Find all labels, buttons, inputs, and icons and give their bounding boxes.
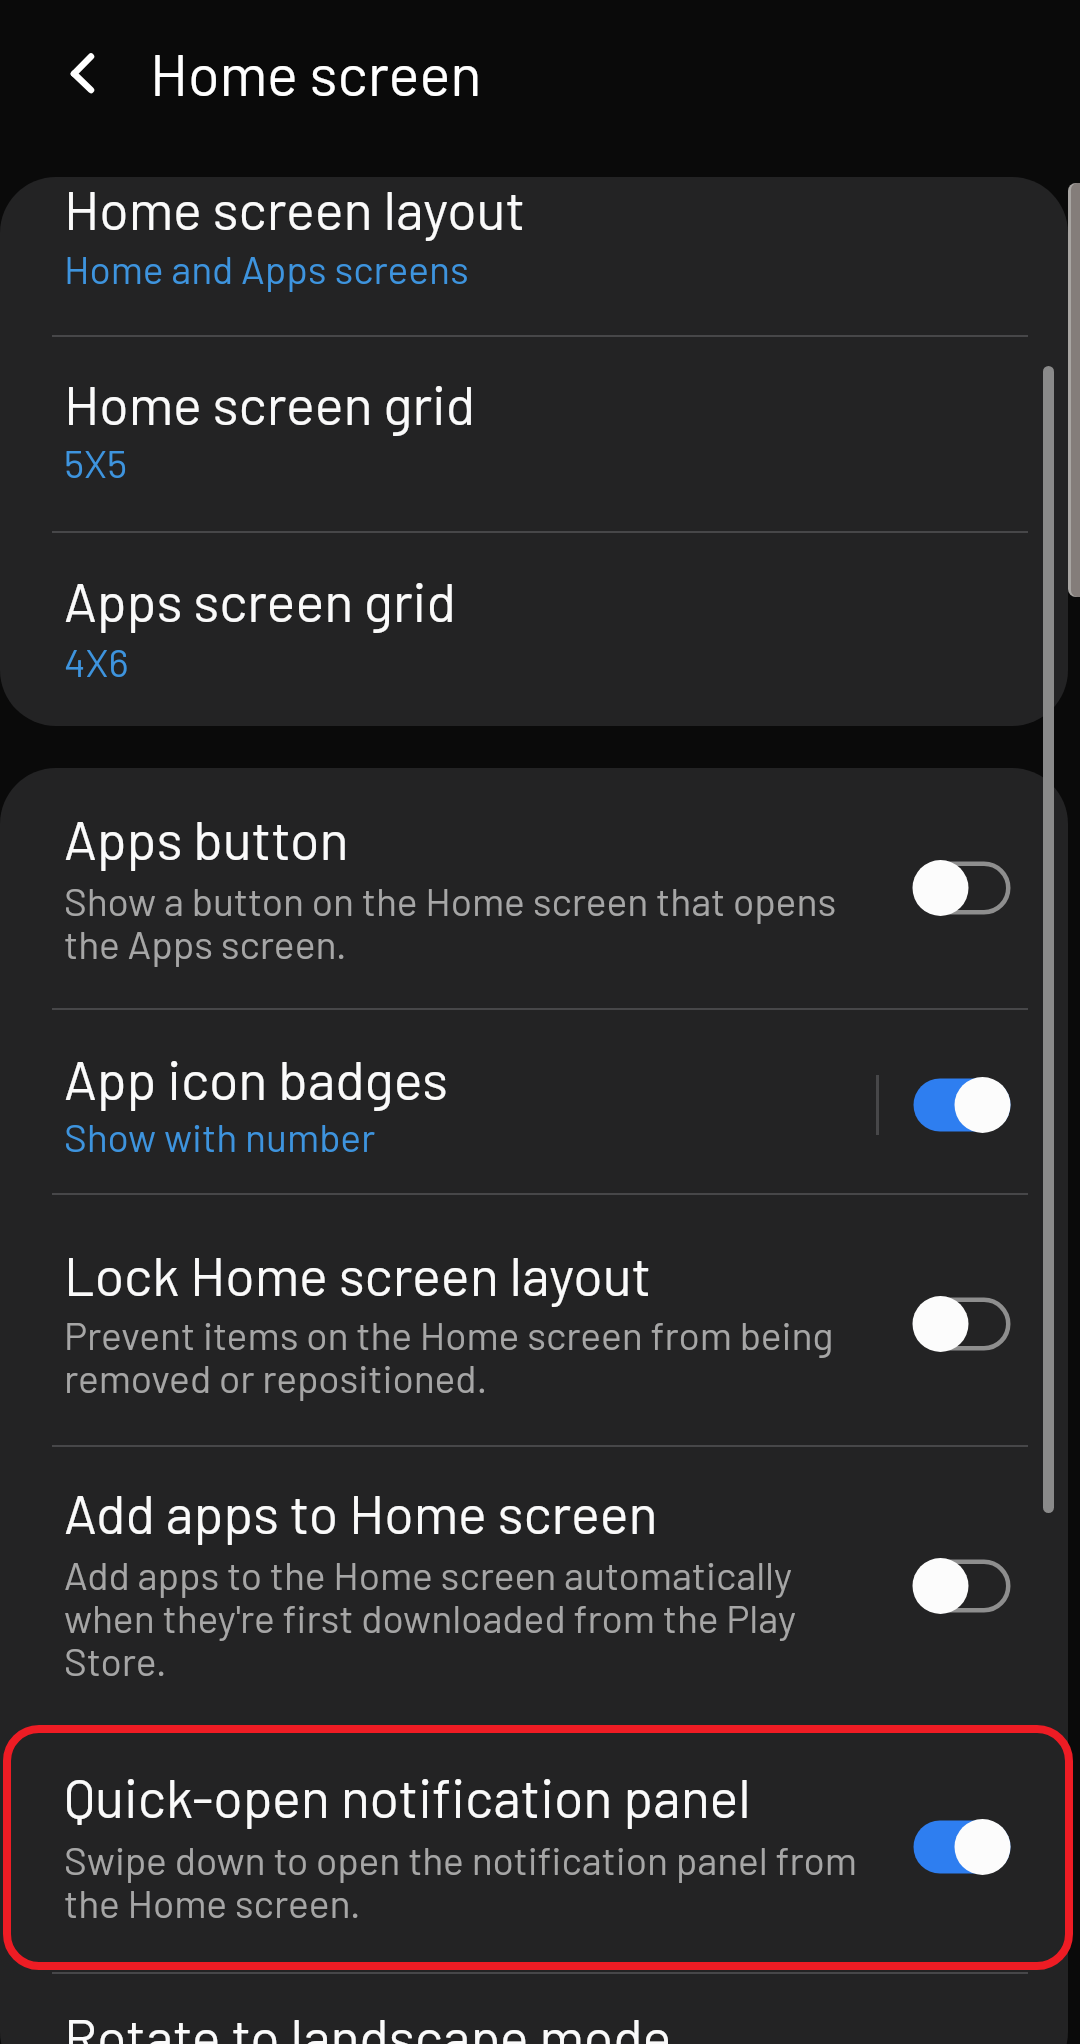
staticText: Home screen grid [64,371,476,436]
button[interactable]: Switch off [892,1534,1032,1638]
staticText: Apps screen grid [64,568,456,633]
staticText: Home screen [150,38,482,108]
button[interactable]: Home screen grid [0,337,1080,531]
staticText: Add apps to the Home screen automaticall… [64,1551,796,1684]
staticText: Home screen layout [64,176,526,241]
button[interactable]: Apps button [0,768,1080,1008]
staticText: Rotate to landscape mode [64,2004,672,2044]
staticText: Lock Home screen layout [64,1242,652,1307]
staticText: Add apps to Home screen [64,1480,658,1545]
staticText: Home and Apps screens [64,245,469,292]
button[interactable]: Quick-open notification panel [0,1728,1080,1972]
button[interactable]: Home screen layout [0,177,1080,335]
staticText: Show with number [64,1113,376,1160]
button[interactable]: App icon badges [0,1010,1080,1193]
staticText: Apps button [64,806,349,871]
staticText: Prevent items on the Home screen from be… [64,1311,834,1401]
button[interactable]: Switch on [892,1795,1032,1899]
button[interactable]: Rotate to landscape mode [0,1974,1080,2044]
staticText: 5X5 [64,439,128,486]
button[interactable]: Switch on [892,1053,1032,1157]
button[interactable]: Switch off [892,1272,1032,1376]
button[interactable]: Switch off [892,836,1032,940]
button[interactable]: Lock Home screen layout [0,1195,1080,1445]
staticText: Show a button on the Home screen that op… [64,877,837,967]
button[interactable]: Navigate up [36,28,130,122]
staticText: App icon badges [64,1046,448,1111]
button[interactable]: Add apps to Home screen [0,1447,1080,1728]
staticText: Swipe down to open the notification pane… [64,1836,857,1926]
button[interactable]: Apps screen grid [0,533,1080,726]
staticText: 4X6 [64,638,129,685]
staticText: Quick-open notification panel [64,1764,751,1829]
